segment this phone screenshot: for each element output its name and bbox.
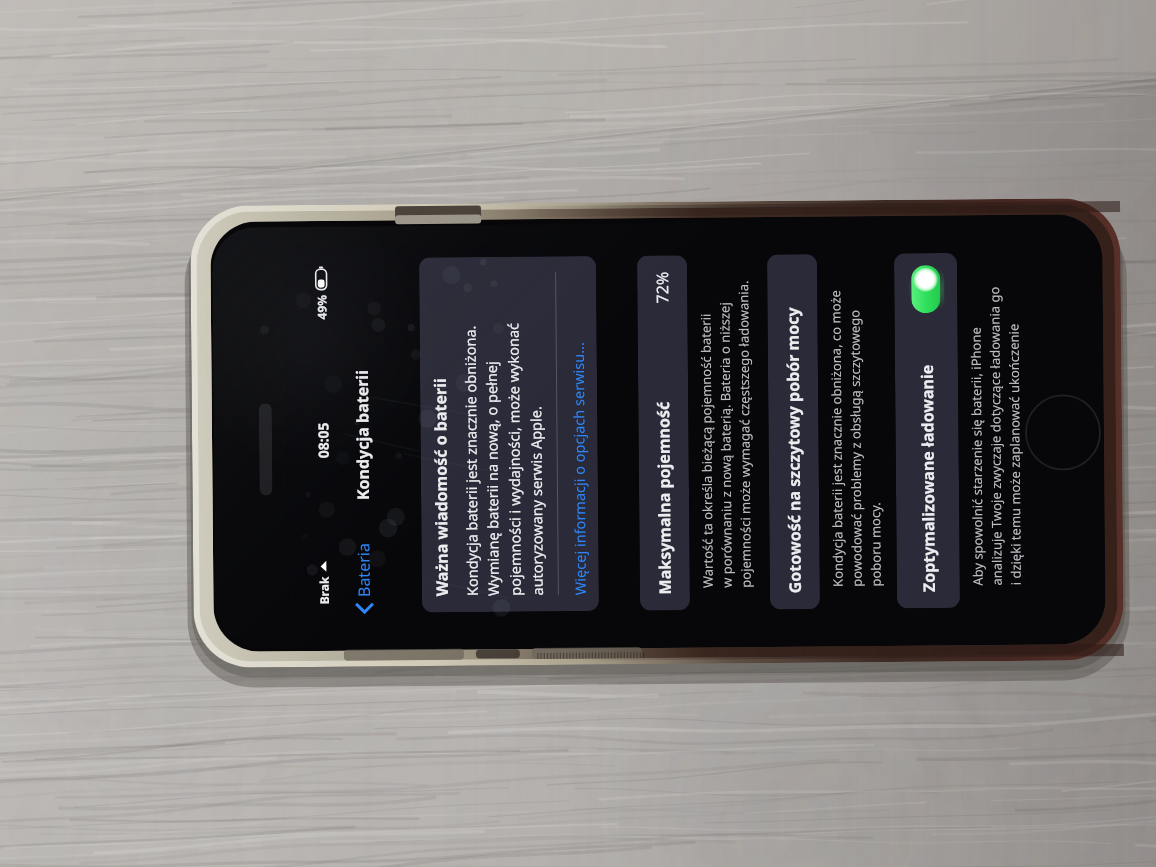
staticText: Zoptymalizowane ładowanie — [916, 364, 940, 592]
button[interactable]: Zoptymalizowane ładowanie — [894, 253, 960, 608]
staticText: Wartość ta określa bieżącą pojemność bat… — [696, 280, 755, 588]
staticText: Bateria — [352, 543, 375, 597]
button[interactable]: Ważna wiadomość o baterii — [419, 256, 599, 612]
staticText: Więcej informacji o opcjach serwisu... — [568, 342, 590, 595]
staticText: 49% — [313, 294, 329, 319]
staticText: 72% — [651, 271, 673, 304]
staticText: Kondycja baterii jest znacznie obniżona,… — [826, 289, 885, 587]
button[interactable]: Zoptymalizowane ładowanie — [907, 261, 944, 317]
staticText: Brak — [316, 576, 332, 604]
staticText: Kondycja baterii — [351, 370, 374, 500]
staticText: Kondycja baterii jest znacznie obniżona.… — [459, 322, 547, 596]
staticText: Gotowość na szczytowy pobór mocy — [781, 307, 806, 593]
staticText: Ważna wiadomość o baterii — [429, 377, 453, 596]
staticText: 08:05 — [313, 422, 333, 458]
staticText: Maksymalna pojemność — [652, 401, 676, 594]
button[interactable]: Bateria — [346, 535, 381, 624]
button[interactable]: Maksymalna pojemność — [637, 255, 690, 611]
staticText: Aby spowolnić starzenie się baterii, iPh… — [966, 286, 1028, 586]
button[interactable]: Gotowość na szczytowy pobór mocy — [767, 254, 820, 609]
